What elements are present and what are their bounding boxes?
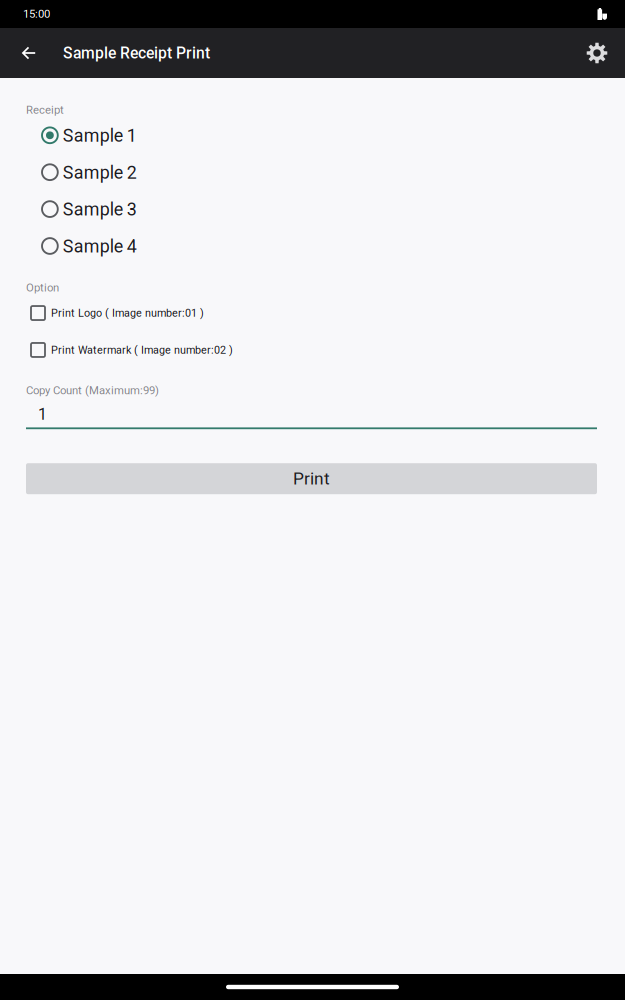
staticText: 1 <box>38 405 47 424</box>
button[interactable]: Print Logo ( Image number:01 ) <box>26 295 597 331</box>
button[interactable]: Sample 4 <box>26 228 597 265</box>
button[interactable]: Sample 1 <box>26 117 597 154</box>
staticText: Sample 2 <box>63 162 137 183</box>
staticText: Sample 4 <box>63 236 137 257</box>
staticText: Sample 1 <box>63 125 137 146</box>
staticText: Sample 3 <box>63 199 137 220</box>
button[interactable]: Sample 3 <box>26 191 597 228</box>
staticText: Receipt <box>26 103 64 117</box>
staticText: Sample Receipt Print <box>63 44 210 62</box>
staticText: Print Logo ( Image number:01 ) <box>51 307 204 319</box>
button[interactable]: Back <box>11 28 47 78</box>
staticText: 15:00 <box>23 7 50 21</box>
staticText: Option <box>26 281 59 294</box>
staticText: Print <box>293 468 330 489</box>
button[interactable]: Print Watermark ( Image number:02 ) <box>26 331 597 368</box>
button[interactable]: Sample 2 <box>26 154 597 191</box>
button[interactable]: Settings <box>575 28 619 78</box>
staticText: Print Watermark ( Image number:02 ) <box>51 344 233 356</box>
staticText: Copy Count (Maximum:99) <box>26 384 159 397</box>
button[interactable]: Print <box>26 463 597 494</box>
